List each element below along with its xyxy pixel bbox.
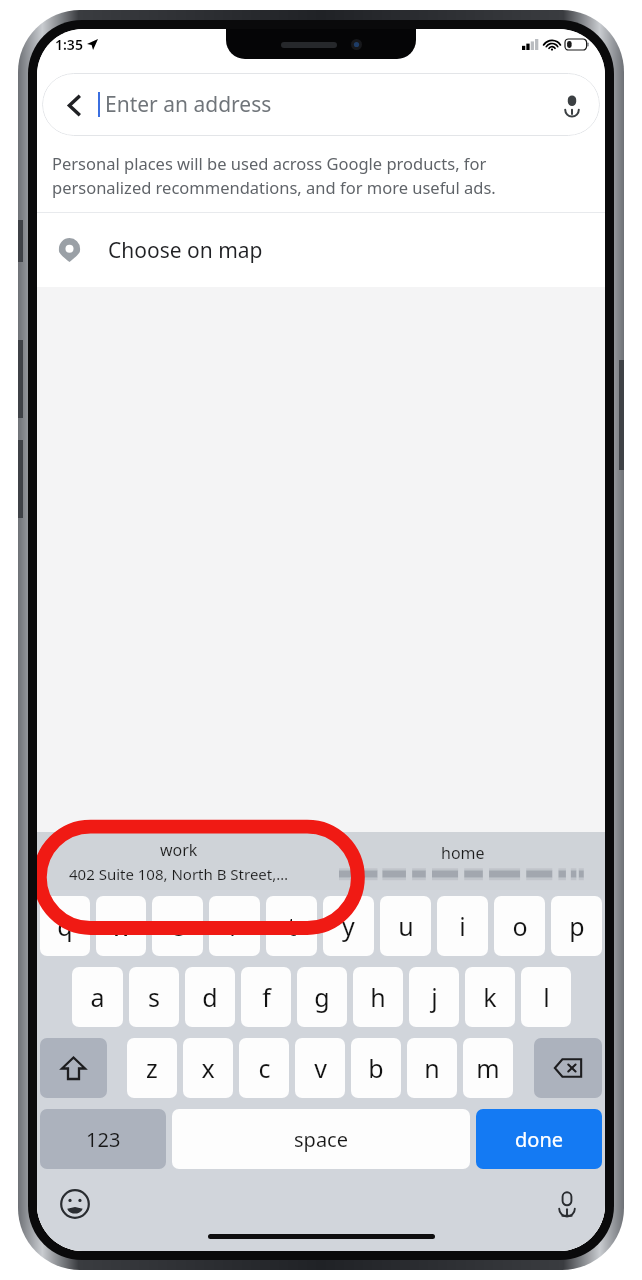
button[interactable]: j [409,967,459,1027]
staticText: t [287,909,297,943]
button[interactable]: m [463,1038,513,1098]
staticText: h [370,980,386,1014]
staticText: 1:35 [55,35,83,54]
staticText: Choose on map [108,236,263,265]
button[interactable]: h [353,967,403,1027]
staticText: i [459,909,466,943]
staticText: s [148,980,160,1014]
staticText: z [146,1051,158,1085]
staticText: l [543,980,550,1014]
button[interactable]: d [185,967,235,1027]
button[interactable]: x [183,1038,233,1098]
staticText: f [262,980,271,1014]
button[interactable]: o [494,896,545,956]
staticText: j [431,980,438,1014]
staticText: q [57,909,73,943]
staticText: 402 Suite 108, North B Street,… [69,864,289,884]
button[interactable]: f [241,967,291,1027]
staticText: w [111,909,131,943]
button[interactable]: k [465,967,515,1027]
button[interactable]: v [295,1038,345,1098]
button[interactable]: done [476,1109,602,1169]
button[interactable]: a [72,967,123,1027]
button[interactable]: Shift [40,1038,107,1098]
button[interactable]: Choose on map [37,213,605,287]
staticText: b [368,1051,384,1085]
staticText: home [441,842,485,864]
button[interactable]: Voice search [550,83,594,127]
button[interactable]: z [127,1038,177,1098]
button[interactable]: u [380,896,431,956]
staticText: c [258,1051,271,1085]
button[interactable]: l [521,967,571,1027]
button[interactable]: s [129,967,179,1027]
button[interactable]: g [297,967,347,1027]
staticText: n [424,1051,440,1085]
button[interactable]: t [266,896,317,956]
button[interactable]: c [239,1038,289,1098]
button[interactable]: w [96,896,146,956]
staticText: Personal places will be used across Goog… [52,152,487,174]
button[interactable]: r [209,896,260,956]
staticText: d [202,980,218,1014]
staticText: o [512,909,528,943]
staticText: e [170,909,185,943]
staticText: r [229,909,240,943]
staticText: x [201,1051,215,1085]
staticText: u [398,909,414,943]
button[interactable]: p [551,896,602,956]
staticText: m [476,1051,500,1085]
button[interactable]: 123 [40,1109,166,1169]
button[interactable]: b [351,1038,401,1098]
button[interactable]: work [37,832,321,890]
staticText: k [483,980,497,1014]
button[interactable]: Dictation [547,1184,587,1224]
staticText: a [90,980,105,1014]
button[interactable]: y [323,896,374,956]
staticText: Enter an address [105,90,272,119]
staticText: v [314,1051,327,1085]
staticText: space [294,1126,348,1153]
button[interactable]: e [152,896,203,956]
button[interactable]: Back [54,85,94,125]
button[interactable]: i [437,896,488,956]
staticText: p [569,909,585,943]
staticText: work [160,839,198,861]
staticText: g [314,980,330,1014]
button[interactable]: space [172,1109,470,1169]
staticText: personalized recommendations, and for mo… [52,176,496,198]
staticText: 123 [86,1126,121,1153]
staticText: y [342,909,355,943]
button[interactable]: Back [42,73,600,136]
button[interactable]: n [407,1038,457,1098]
button[interactable]: q [40,896,90,956]
staticText: done [515,1126,564,1153]
button[interactable]: home [321,832,605,890]
button[interactable]: Emoji [55,1184,95,1224]
button[interactable]: Backspace [534,1038,602,1098]
